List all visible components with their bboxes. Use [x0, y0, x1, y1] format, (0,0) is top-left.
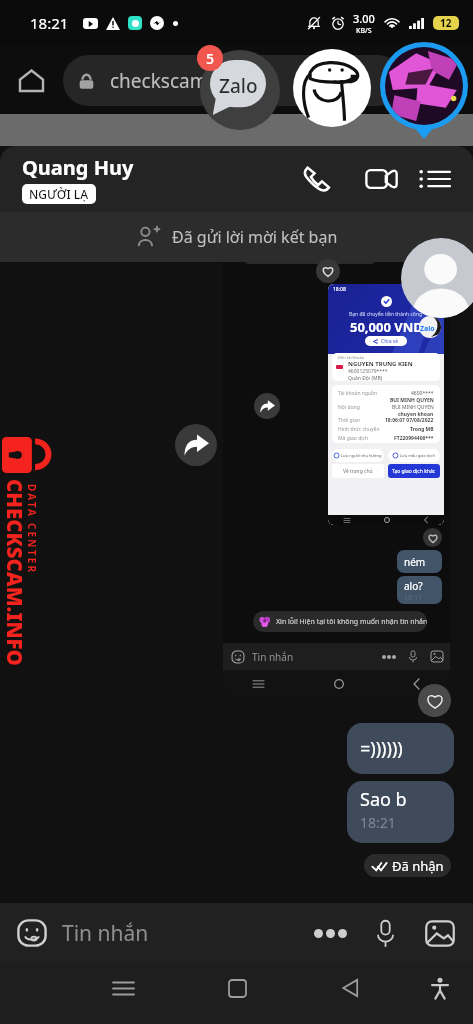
- staticText: chuyen khoan: [398, 411, 434, 417]
- button[interactable]: Forward: [175, 424, 217, 466]
- staticText: Zalo: [420, 324, 435, 334]
- staticText: Xin lỗi! Hiện tại tôi không muốn nhận ti…: [276, 617, 427, 627]
- button[interactable]: Profile bubble: [401, 238, 473, 318]
- button[interactable]: Active chat bubble: [380, 42, 468, 130]
- staticText: 18:21: [30, 13, 69, 33]
- button[interactable]: 18:08: [223, 262, 450, 697]
- staticText: Tài khoản nguồn: [338, 390, 390, 397]
- button[interactable]: Đã gửi lời mời kết bạn: [0, 212, 473, 262]
- staticText: Đến tài khoản: [338, 355, 365, 360]
- button[interactable]: Call: [293, 156, 339, 202]
- staticText: Sao b: [360, 787, 407, 812]
- button[interactable]: Sticker: [12, 903, 52, 963]
- staticText: KB/S: [356, 26, 372, 36]
- button[interactable]: Home: [212, 963, 262, 1013]
- staticText: Đã nhận: [392, 857, 444, 875]
- staticText: NGUYEN TRUNG KIEN: [348, 360, 413, 368]
- staticText: DATA CENTER: [25, 484, 39, 575]
- staticText: Đã gửi lời mời kết bạn: [172, 226, 338, 248]
- button[interactable]: Sao b: [347, 781, 454, 843]
- staticText: 12: [440, 16, 452, 30]
- button[interactable]: Options: [411, 156, 457, 202]
- staticText: BUI MINH QUYEN: [392, 404, 434, 411]
- staticText: Hình thức chuyển: [338, 426, 410, 433]
- button[interactable]: Accessibility: [415, 963, 465, 1013]
- button[interactable]: =)))))): [347, 723, 454, 774]
- staticText: 18:21: [360, 813, 396, 832]
- staticText: Nội dung: [338, 404, 392, 411]
- staticText: 5: [206, 49, 215, 68]
- staticText: CHECKSCAM.INFO: [3, 479, 29, 666]
- button[interactable]: Home: [13, 62, 49, 98]
- staticText: FT220994406***: [394, 435, 434, 442]
- staticText: ném: [404, 555, 426, 569]
- staticText: Quân Đội (MB): [348, 375, 383, 381]
- staticText: 4600****: [411, 390, 434, 397]
- button[interactable]: [316, 259, 340, 283]
- staticText: Tin nhắn: [252, 650, 294, 664]
- staticText: NGƯỜI LẠ: [29, 186, 89, 202]
- staticText: Quang Huy: [22, 154, 134, 181]
- staticText: Bạn đã chuyển tiền thành công: [349, 311, 423, 318]
- staticText: 18:06:07 07/08/2022: [385, 417, 434, 424]
- staticText: Tin nhắn: [62, 919, 149, 948]
- button[interactable]: Send image: [418, 903, 462, 963]
- staticText: Tạo giao dịch khác: [392, 468, 436, 475]
- staticText: Lưu mẫu giao dịch: [400, 453, 435, 458]
- staticText: alo?: [404, 579, 423, 593]
- button[interactable]: Contact bubble: [293, 49, 371, 127]
- staticText: BUI MINH QUYEN: [390, 397, 434, 404]
- button[interactable]: Zalo chat bubble: [200, 50, 280, 130]
- staticText: 4600125079****: [348, 368, 388, 375]
- button[interactable]: Đã nhận: [364, 854, 451, 877]
- staticText: Lưu người thụ hưởng: [341, 453, 382, 458]
- button[interactable]: checkscam: [63, 55, 403, 106]
- staticText: checkscam: [110, 68, 208, 94]
- staticText: 18:11: [404, 593, 422, 603]
- staticText: 3.00: [353, 11, 375, 26]
- button[interactable]: Voice message: [364, 903, 406, 963]
- staticText: =)))))): [360, 736, 403, 761]
- button[interactable]: Recent apps: [98, 963, 148, 1013]
- staticText: Về trang chủ: [343, 468, 373, 475]
- staticText: 50,000 VND: [350, 318, 423, 336]
- staticText: Zalo: [219, 73, 258, 99]
- staticText: Chia sẻ: [381, 338, 399, 345]
- staticText: Thời gian: [338, 417, 385, 424]
- staticText: Mã giao dịch: [338, 435, 394, 442]
- button[interactable]: Back: [325, 963, 375, 1013]
- button[interactable]: Video call: [357, 156, 403, 202]
- staticText: Trong MB: [410, 426, 434, 433]
- button[interactable]: More options: [308, 903, 352, 963]
- staticText: 18:08: [333, 286, 346, 293]
- button[interactable]: Like: [418, 684, 451, 717]
